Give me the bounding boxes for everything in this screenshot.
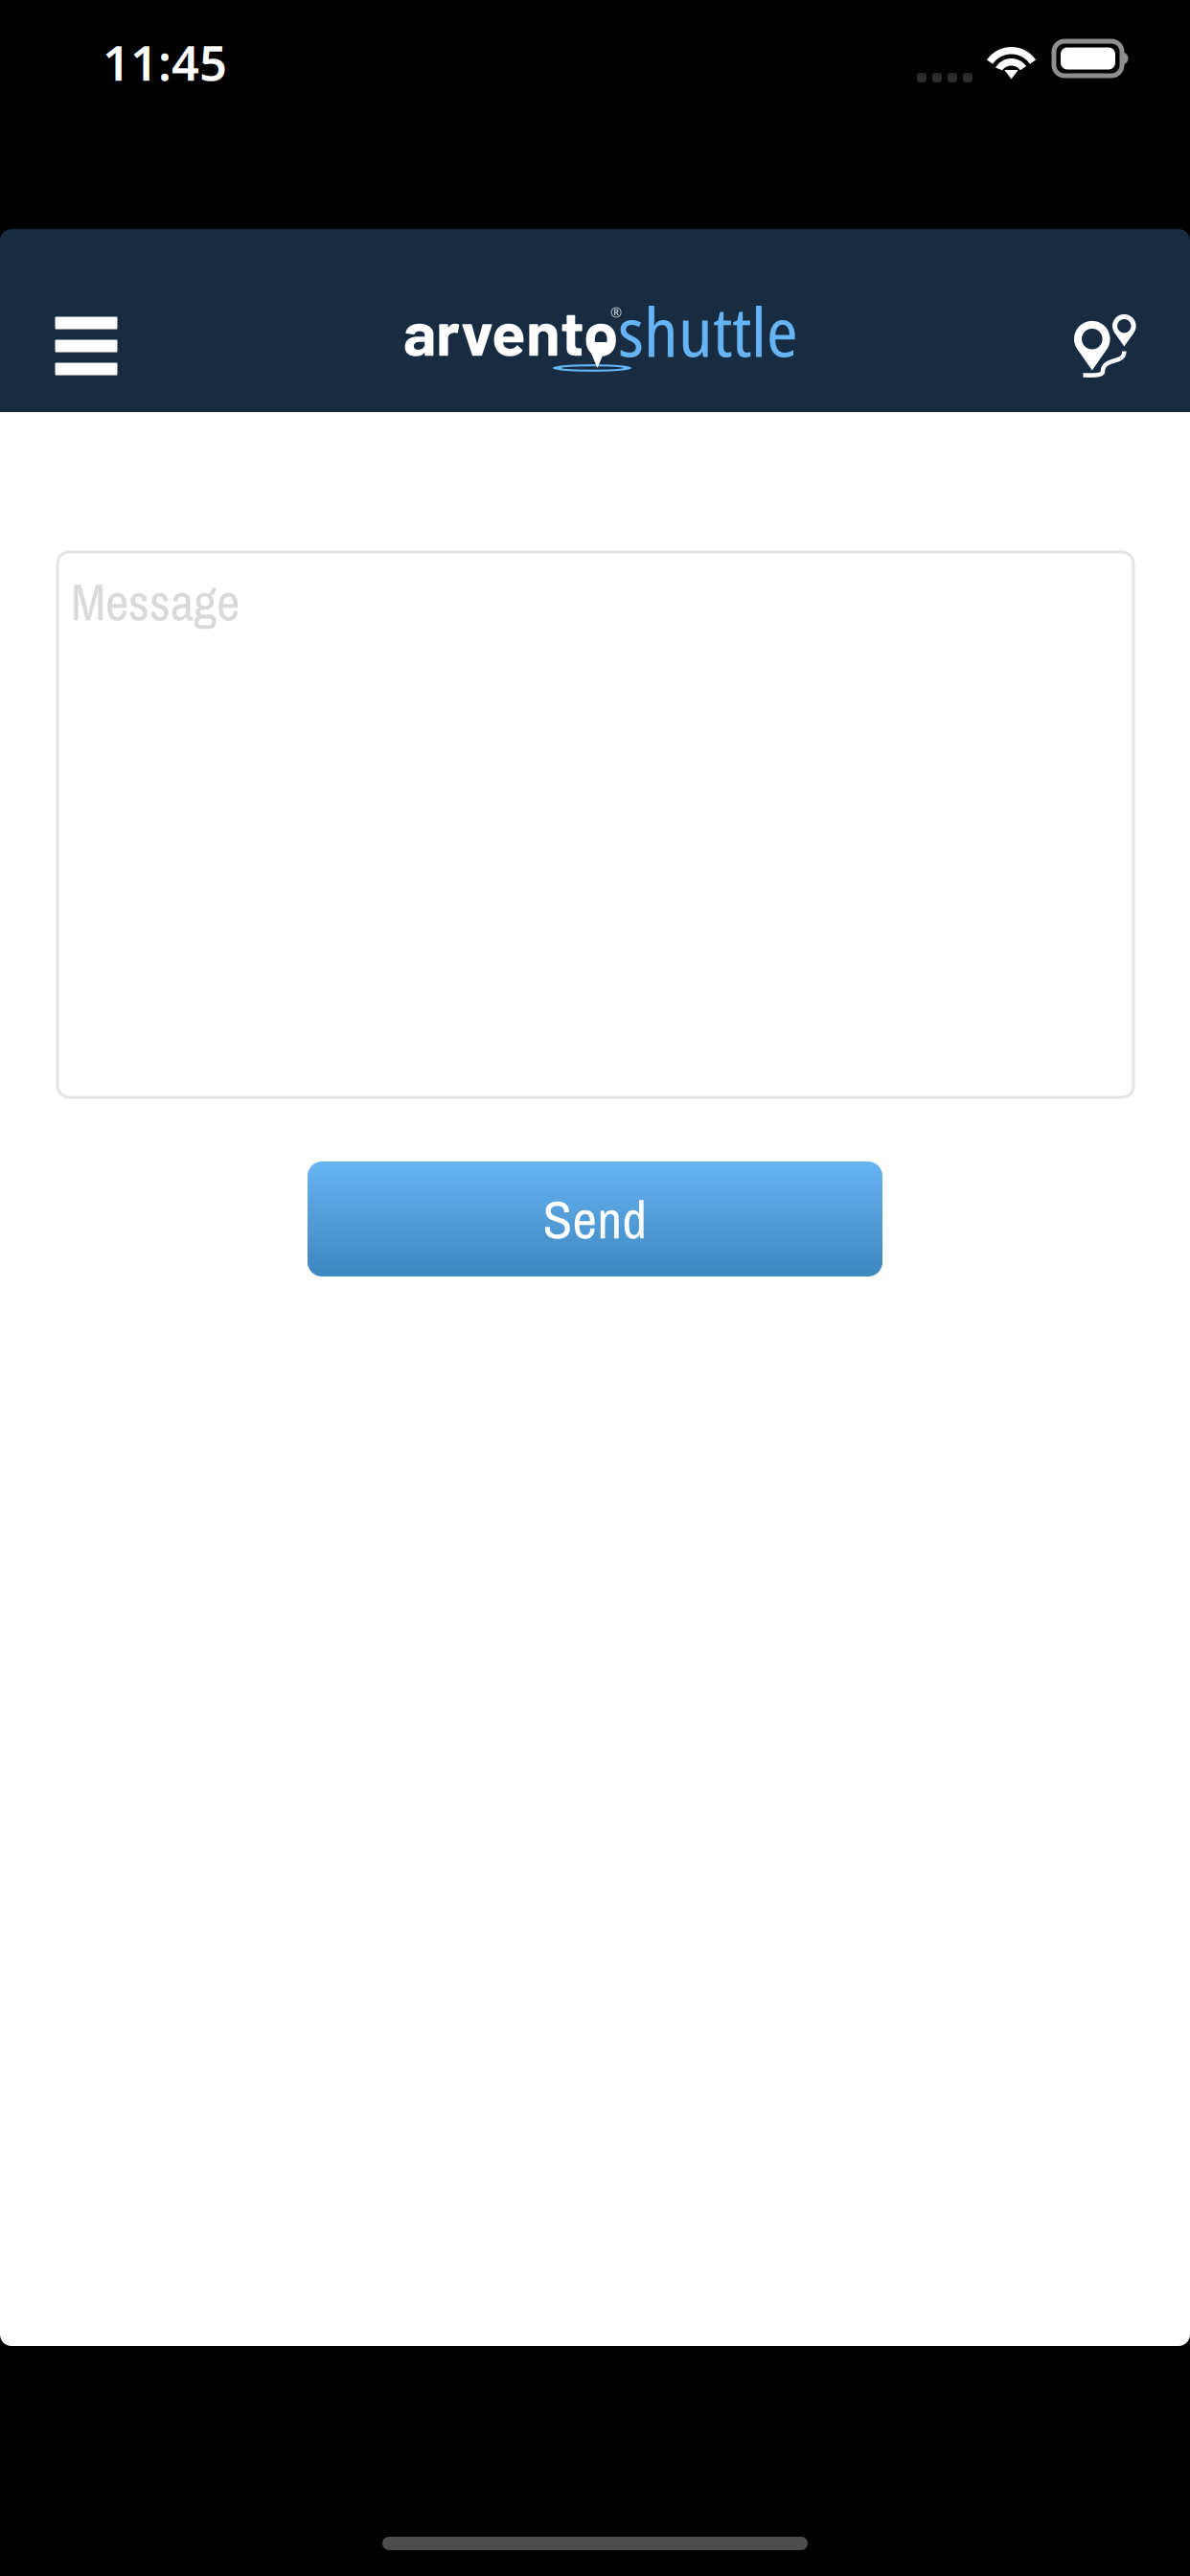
staticText: Send [543, 1183, 647, 1255]
staticText: 11:45 [103, 30, 227, 94]
button[interactable]: Send [308, 1161, 882, 1276]
staticText: arvento [403, 293, 618, 368]
staticText: Message [71, 567, 240, 636]
button[interactable]: Route map [1046, 277, 1165, 421]
staticText: shuttle [618, 285, 798, 377]
button[interactable]: Menu [24, 274, 149, 418]
staticText: ® [610, 303, 622, 322]
